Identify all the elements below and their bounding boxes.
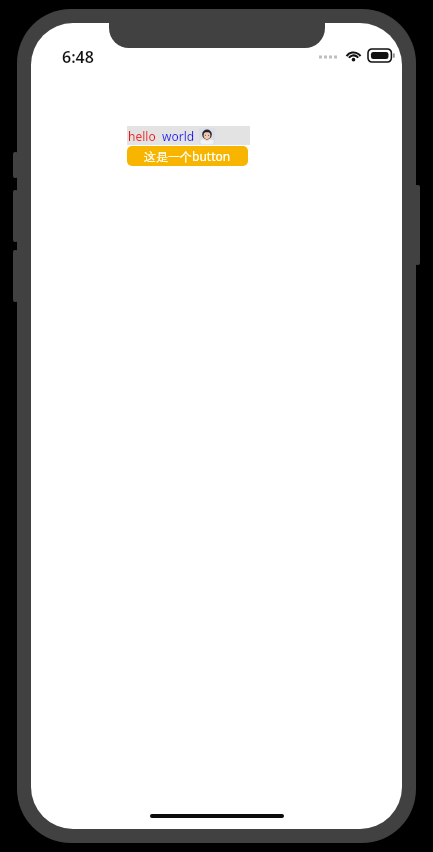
staticText: 这是一个button — [144, 148, 231, 164]
button[interactable]: 这是一个button — [127, 146, 248, 166]
other: Avatar — [199, 128, 215, 144]
staticText: 6:48 — [62, 46, 94, 68]
staticText: world — [162, 128, 195, 144]
staticText: hello — [128, 128, 156, 144]
